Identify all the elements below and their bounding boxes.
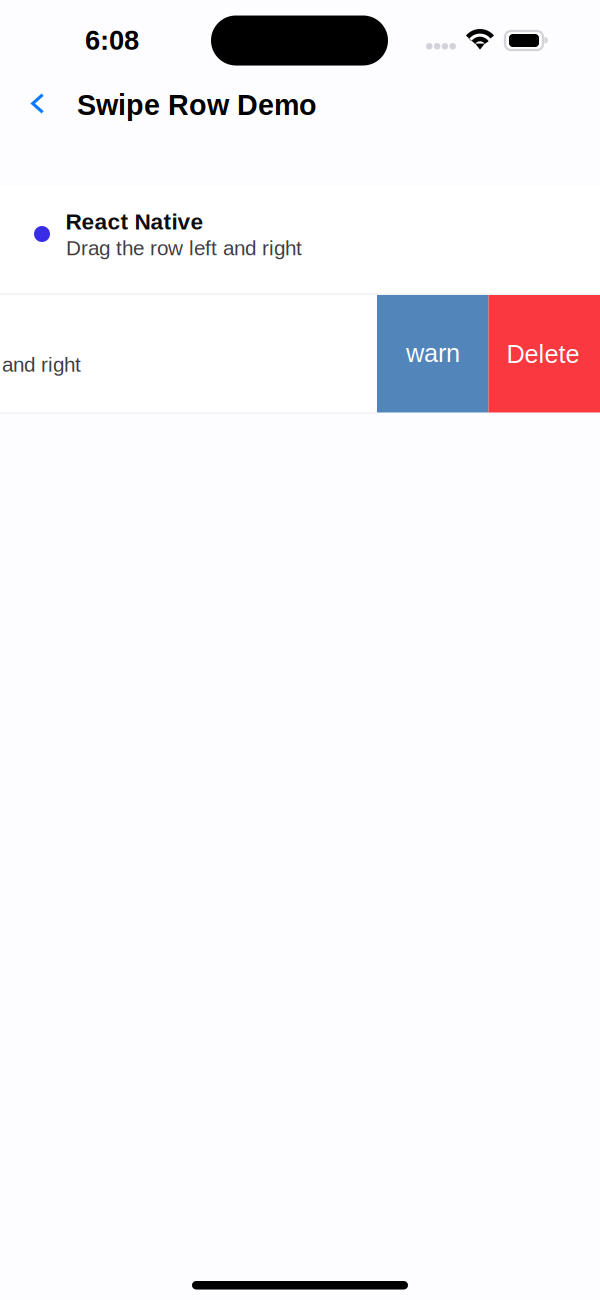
button[interactable]: warn [377,295,488,412]
staticText: warn [406,339,460,367]
button[interactable]: Drag the row left and right [0,295,600,413]
staticText: React Native [65,209,203,234]
staticText: 6:08 [85,25,139,55]
button[interactable]: Swipe Row Demo [77,82,317,128]
button[interactable]: Delete [488,295,600,412]
button[interactable]: Back [13,80,61,126]
staticText: Swipe Row Demo [77,89,317,121]
staticText: Drag the row left and right [0,353,81,376]
button[interactable]: React Native [0,186,600,294]
staticText: Drag the row left and right [66,236,302,260]
staticText: Delete [506,340,579,368]
